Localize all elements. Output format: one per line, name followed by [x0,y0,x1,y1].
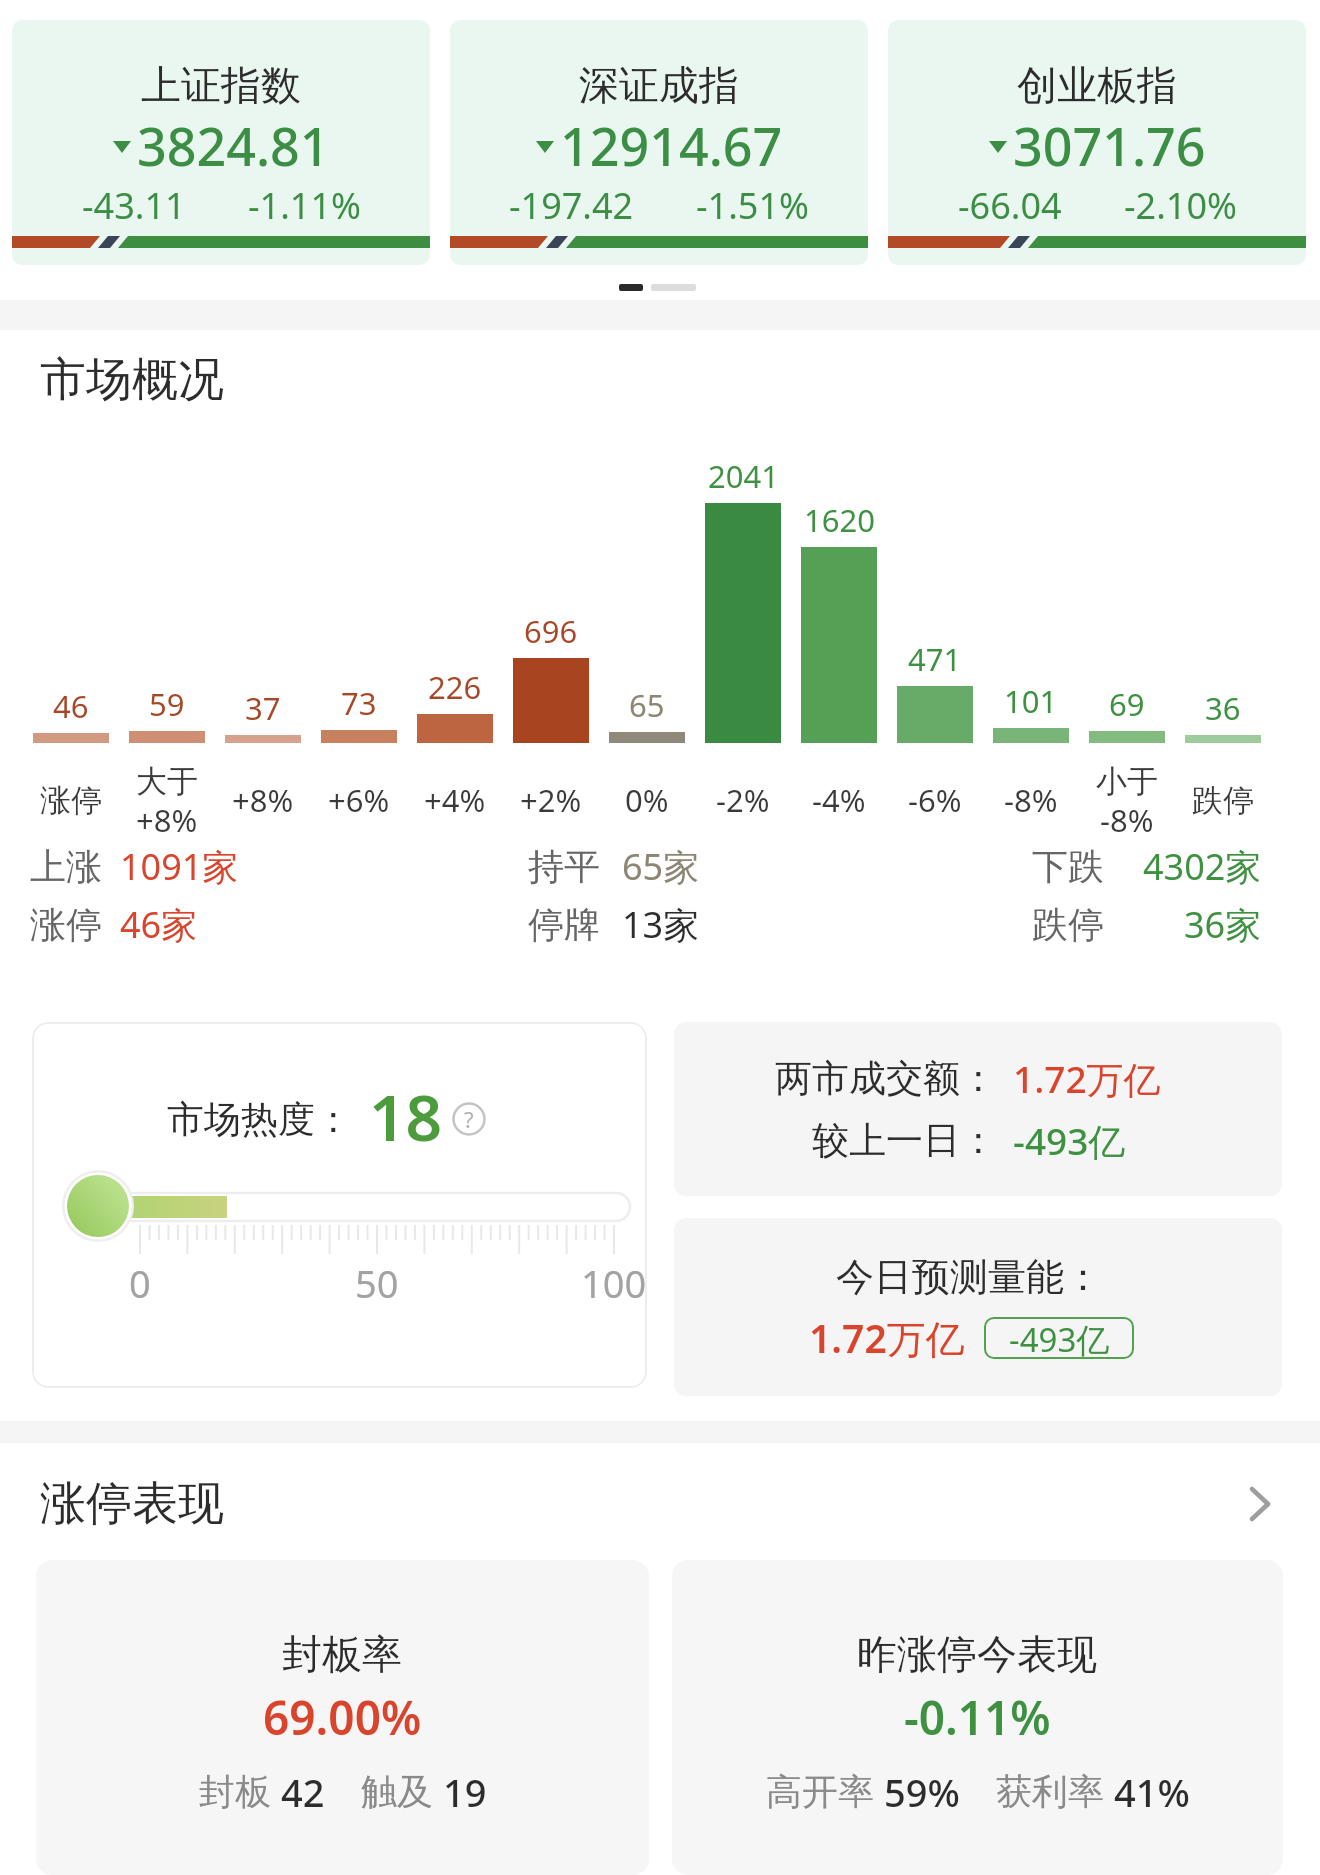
staticText: -8% [1100,799,1154,841]
staticText: 42 [281,1766,325,1818]
staticText: 市场概况 [40,351,224,409]
staticText: 3071.76 [1013,110,1206,181]
staticText: +6% [328,779,390,821]
staticText: 封板率 [282,1629,402,1679]
staticText: 涨停 [40,781,102,820]
button[interactable] [672,1560,1283,1875]
staticText: 1.72万亿 [809,1311,965,1364]
button[interactable]: 创业板指 [888,20,1306,265]
button[interactable] [32,1022,647,1388]
staticText: 涨停表现 [40,1475,224,1533]
button[interactable]: 深证成指 [450,20,868,265]
staticText: +8% [136,799,198,841]
staticText: 小于 [1096,762,1158,801]
staticText: -0.11% [904,1686,1051,1749]
staticText: 高开率 [766,1766,884,1815]
staticText: 73 [341,682,377,724]
staticText: 46 [53,685,89,727]
staticText: -493亿 [1013,1115,1126,1166]
staticText: 18 [369,1073,443,1160]
staticText: ? [464,1104,474,1134]
staticText: 较上一日： [812,1117,997,1164]
staticText: 大于 [136,762,198,801]
staticText: 59% [884,1766,960,1818]
staticText: 3824.81 [137,110,330,181]
staticText: 获利率 [960,1766,1114,1815]
staticText: 持平 [528,844,600,889]
staticText: -8% [1004,779,1058,821]
staticText: +4% [424,779,486,821]
staticText: 36家 [1184,900,1262,949]
staticText: 触及 [325,1766,443,1815]
staticText: 上涨 [30,844,102,889]
staticText: 100 [581,1257,647,1309]
staticText: 226 [428,666,482,708]
staticText: 69.00% [263,1686,422,1749]
staticText: -2.10% [1124,181,1237,230]
staticText: 101 [1004,680,1058,722]
staticText: -493亿 [1009,1317,1110,1359]
button[interactable] [36,1560,649,1875]
staticText: 36 [1205,687,1241,729]
staticText: 50 [355,1257,399,1309]
staticText: 1091家 [120,842,239,891]
staticText: 0% [625,779,669,821]
staticText: -1.11% [248,181,361,230]
staticText: 封板 [199,1766,281,1815]
staticText: 跌停 [1192,781,1254,820]
staticText: 41% [1114,1766,1190,1818]
button[interactable] [0,1465,1320,1545]
staticText: 2041 [708,455,779,497]
staticText: 1.72万亿 [1013,1053,1161,1104]
staticText: 上证指数 [141,60,301,110]
staticText: 13家 [622,900,700,949]
staticText: +8% [232,779,294,821]
button[interactable] [674,1022,1282,1196]
staticText: 471 [908,638,962,680]
staticText: 昨涨停今表现 [857,1629,1097,1679]
staticText: 46家 [120,900,198,949]
button[interactable]: 上证指数 [12,20,430,265]
staticText: +2% [520,779,582,821]
staticText: -197.42 [509,181,634,230]
staticText: -1.51% [696,181,809,230]
staticText: 19 [443,1766,487,1818]
staticText: 4302家 [1143,842,1262,891]
staticText: 涨停 [30,902,102,947]
staticText: -43.11 [82,181,186,230]
staticText: 1620 [804,499,875,541]
staticText: 停牌 [528,902,600,947]
staticText: 696 [524,610,578,652]
staticText: 65家 [622,842,700,891]
staticText: 65 [629,684,665,726]
staticText: 0 [129,1257,151,1309]
staticText: -6% [908,779,962,821]
staticText: -4% [812,779,866,821]
staticText: -2% [716,779,770,821]
staticText: 两市成交额： [775,1055,997,1102]
staticText: 69 [1109,683,1145,725]
staticText: 市场热度： [167,1096,352,1143]
staticText: 12914.67 [560,110,783,181]
staticText: 59 [149,683,185,725]
staticText: 跌停 [1032,902,1104,947]
staticText: 深证成指 [579,60,739,110]
button[interactable] [674,1218,1282,1396]
staticText: 今日预测量能： [836,1253,1102,1301]
staticText: -66.04 [958,181,1062,230]
staticText: 创业板指 [1017,60,1177,110]
staticText: 37 [245,687,281,729]
staticText: 下跌 [1032,844,1104,889]
